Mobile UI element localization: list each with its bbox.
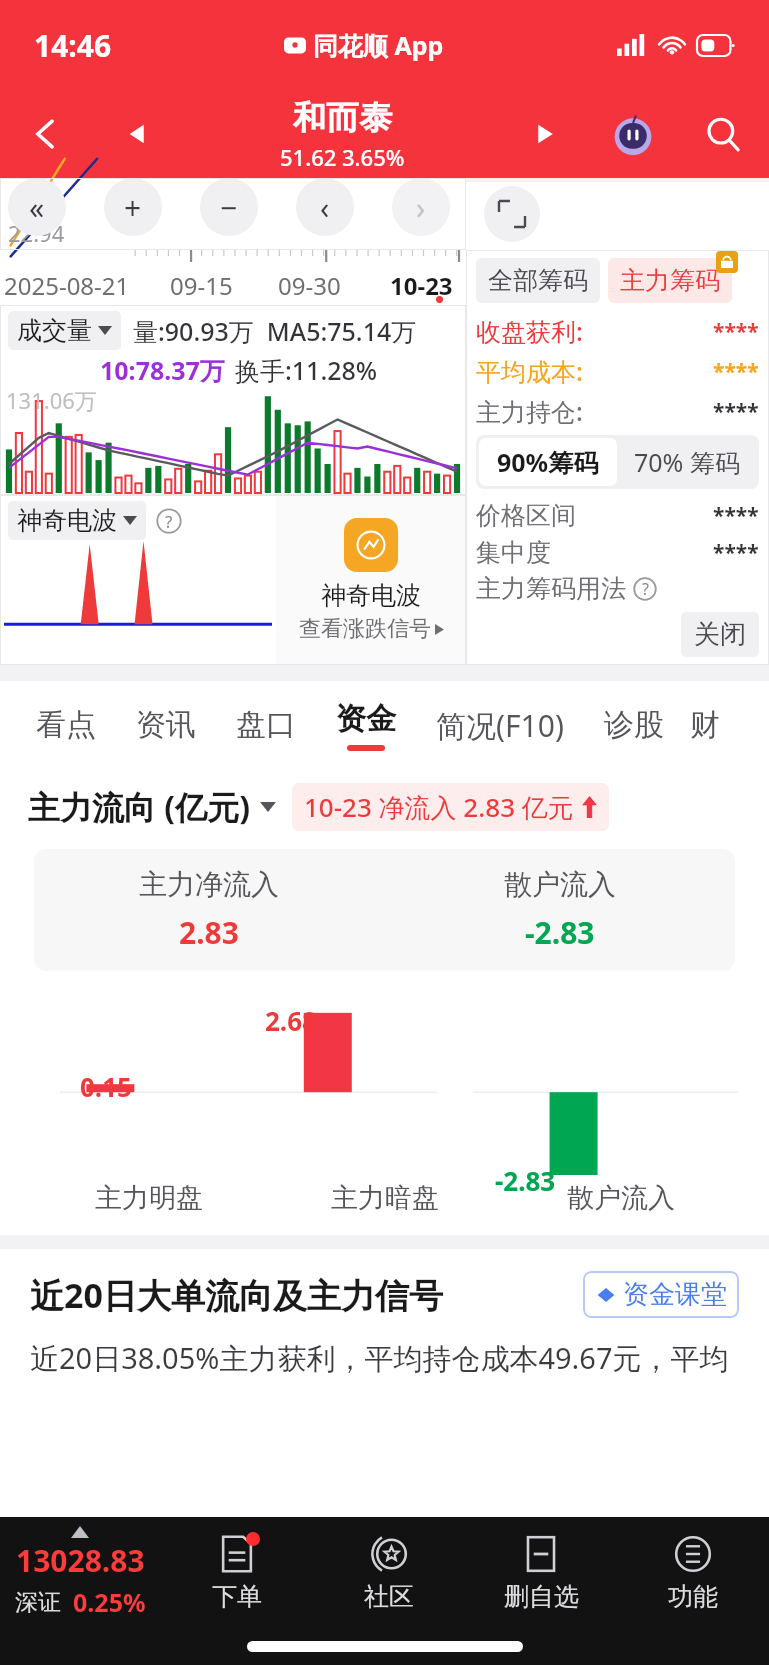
staticText: 量:90.93万 MA5:75.14万	[133, 314, 417, 348]
staticText: ?	[642, 578, 649, 600]
button[interactable]: 主力流向 (亿元)	[28, 785, 276, 829]
staticText: 131.06万	[6, 385, 97, 415]
button[interactable]: Fullscreen	[484, 186, 540, 242]
button[interactable]: 简况(F10)	[436, 681, 564, 769]
staticText: 盘口	[236, 706, 296, 744]
button[interactable]: AI assistant	[589, 90, 677, 178]
staticText: 14:46	[34, 25, 112, 66]
button[interactable]: Scroll right	[392, 178, 450, 236]
staticText: 看点	[36, 706, 96, 744]
button[interactable]: Collapse	[8, 178, 66, 236]
staticText: 删自选	[504, 1581, 579, 1612]
button[interactable]: 70% 筹码	[617, 438, 756, 486]
staticText: 09-15	[170, 269, 233, 302]
button[interactable]: 90%筹码	[479, 438, 617, 486]
staticText: 主力筹码用法	[476, 573, 626, 604]
button[interactable]: 成交量	[8, 311, 121, 350]
button[interactable]: Search	[677, 90, 769, 178]
staticText: 资讯	[136, 706, 196, 744]
staticText: 近20日大单流向及主力信号	[30, 1272, 443, 1318]
staticText: 散户流入	[504, 867, 616, 902]
button[interactable]: Zoom out	[200, 178, 258, 236]
button[interactable]: 资金	[336, 681, 396, 769]
button[interactable]: 主力筹码用法	[476, 573, 657, 604]
staticText: 资金	[336, 700, 396, 738]
staticText: 同花顺 App	[313, 28, 444, 62]
staticText: 51.62 3.65%	[280, 142, 405, 172]
button[interactable]: 神奇电波	[8, 501, 146, 540]
staticText: 神奇电波	[17, 505, 117, 536]
button[interactable]: Zoom in	[104, 178, 162, 236]
staticText: 2.68	[265, 1003, 317, 1038]
staticText: 主力流向 (亿元)	[28, 785, 251, 829]
staticText: ›	[416, 187, 426, 228]
staticText: 10-23 净流入 2.83 亿元	[304, 789, 574, 825]
button[interactable]: Previous stock	[92, 90, 184, 178]
staticText: 诊股	[604, 706, 664, 744]
button[interactable]: 主力净流入	[34, 849, 735, 971]
button[interactable]: 诊股	[604, 681, 664, 769]
staticText: ?	[165, 510, 173, 533]
button[interactable]: 下单	[160, 1517, 313, 1627]
button[interactable]: 功能	[617, 1517, 769, 1627]
staticText: 主力持仓:	[476, 394, 583, 428]
button[interactable]: 看点	[36, 681, 96, 769]
button[interactable]: 社区	[313, 1517, 465, 1627]
staticText: 社区	[364, 1581, 414, 1612]
staticText: 09-30	[278, 269, 341, 302]
staticText: ****	[713, 397, 759, 426]
staticText: 主力净流入	[139, 867, 279, 902]
button[interactable]: Back	[0, 90, 92, 178]
staticText: 22.94	[8, 218, 65, 248]
staticText: 财	[690, 706, 720, 744]
staticText: 2.83	[179, 912, 239, 953]
staticText: ****	[713, 501, 759, 530]
staticText: 主力暗盘	[331, 1181, 439, 1215]
staticText: 价格区间	[476, 500, 576, 531]
staticText: 收盘获利:	[476, 314, 583, 348]
button[interactable]: 资金课堂	[583, 1271, 739, 1318]
staticText: 查看涨跌信号	[299, 615, 431, 643]
staticText: ****	[713, 317, 759, 346]
staticText: 神奇电波	[321, 580, 421, 611]
staticText: 简况(F10)	[436, 705, 564, 746]
button[interactable]: 神奇电波	[276, 495, 466, 665]
button[interactable]: 财	[690, 681, 720, 769]
staticText: ‹	[320, 187, 330, 228]
staticText: 关闭	[694, 618, 746, 651]
staticText: 功能	[668, 1581, 718, 1612]
button[interactable]: 删自选	[465, 1517, 617, 1627]
staticText: ****	[713, 538, 759, 567]
staticText: 资金课堂	[623, 1278, 727, 1311]
staticText: 平均成本:	[476, 354, 583, 388]
staticText: 全部筹码	[488, 265, 588, 296]
staticText: 和而泰	[293, 97, 392, 139]
button[interactable]: 10-23 净流入 2.83 亿元	[292, 783, 609, 831]
button[interactable]: Next stock	[501, 90, 589, 178]
staticText: 主力明盘	[95, 1181, 203, 1215]
staticText: 换手:11.28%	[235, 353, 378, 387]
button[interactable]: 全部筹码	[476, 258, 600, 303]
staticText: 近20日38.05%主力获利，平均持仓成本49.67元，平均	[30, 1338, 729, 1378]
button[interactable]: 资讯	[136, 681, 196, 769]
staticText: 主力筹码	[620, 265, 720, 296]
staticText: -2.83	[525, 912, 595, 953]
staticText: -2.83	[495, 1163, 556, 1198]
staticText: 13028.83	[16, 1540, 145, 1581]
button[interactable]: 主力筹码	[608, 258, 732, 303]
staticText: 90%筹码	[497, 445, 599, 479]
staticText: 集中度	[476, 537, 551, 568]
button[interactable]: 13028.83	[0, 1517, 160, 1627]
staticText: 0.15	[80, 1069, 132, 1104]
staticText: «	[29, 187, 45, 228]
button[interactable]: Help	[156, 508, 182, 534]
button[interactable]: 和而泰	[184, 97, 501, 172]
button[interactable]: Scroll left	[296, 178, 354, 236]
staticText: −	[220, 187, 238, 228]
staticText: +	[124, 187, 142, 228]
staticText: 10:78.37万	[100, 353, 225, 387]
button[interactable]: 关闭	[681, 612, 759, 657]
staticText: ****	[713, 357, 759, 386]
button[interactable]: 盘口	[236, 681, 296, 769]
staticText: 散户流入	[567, 1181, 675, 1215]
